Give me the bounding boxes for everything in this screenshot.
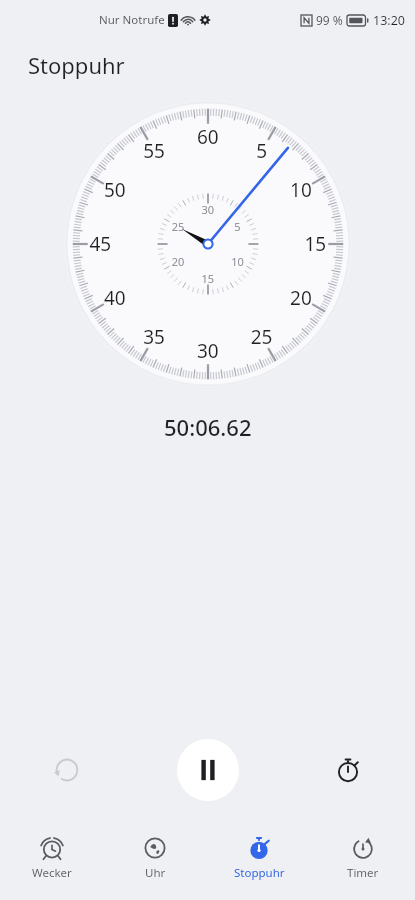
- staticText: 13:20: [373, 12, 405, 29]
- button[interactable]: Timer: [311, 828, 415, 888]
- staticText: Stoppuhr: [234, 865, 285, 881]
- button[interactable]: Pause: [177, 739, 239, 801]
- staticText: Nur Notrufe: [99, 12, 165, 28]
- staticText: 50:06.62: [164, 412, 252, 442]
- button[interactable]: Runde: [281, 735, 415, 805]
- button[interactable]: Uhr: [103, 828, 207, 888]
- staticText: Uhr: [145, 865, 166, 881]
- staticText: 99 %: [316, 12, 343, 28]
- button[interactable]: Wecker: [0, 828, 103, 888]
- button[interactable]: Zurücksetzen: [0, 735, 134, 805]
- button[interactable]: Stoppuhr: [207, 828, 311, 888]
- staticText: Timer: [347, 865, 379, 881]
- staticText: Wecker: [32, 865, 72, 881]
- staticText: Stoppuhr: [28, 50, 125, 80]
